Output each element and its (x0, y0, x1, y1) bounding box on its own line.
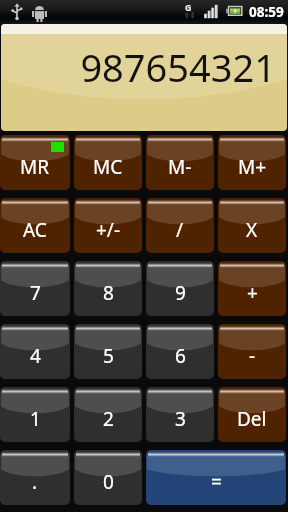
staticText: 987654321 (80, 41, 276, 93)
staticText: . (32, 469, 38, 495)
staticText: AC (23, 217, 47, 243)
staticText: 4 (30, 343, 41, 369)
staticText: 0 (103, 469, 114, 495)
button[interactable]: 0 (74, 450, 142, 505)
button[interactable]: MC (74, 135, 142, 190)
staticText: = (211, 469, 222, 495)
button[interactable]: M+ (218, 135, 286, 190)
staticText: X (246, 217, 258, 243)
button[interactable]: MR (0, 135, 70, 190)
staticText: 9 (175, 280, 186, 306)
button[interactable]: 1 (0, 387, 70, 442)
button[interactable]: 7 (0, 261, 70, 316)
staticText: + (247, 280, 258, 306)
staticText: MR (20, 154, 50, 180)
button[interactable]: . (0, 450, 70, 505)
button[interactable]: 3 (146, 387, 214, 442)
button[interactable]: +/- (74, 198, 142, 253)
button[interactable]: Del (218, 387, 286, 442)
staticText: MC (93, 154, 123, 180)
button[interactable]: 2 (74, 387, 142, 442)
button[interactable]: + (218, 261, 286, 316)
button[interactable]: / (146, 198, 214, 253)
button[interactable]: - (218, 324, 286, 379)
staticText: - (249, 343, 256, 369)
button[interactable]: 5 (74, 324, 142, 379)
staticText: 5 (103, 343, 114, 369)
button[interactable]: AC (0, 198, 70, 253)
staticText: 1 (30, 406, 41, 432)
staticText: +/- (96, 217, 121, 243)
staticText: 8 (103, 280, 114, 306)
button[interactable]: 4 (0, 324, 70, 379)
staticText: Del (237, 406, 267, 432)
staticText: 08:59 (249, 3, 284, 21)
button[interactable]: 9 (146, 261, 214, 316)
button[interactable]: 8 (74, 261, 142, 316)
staticText: / (176, 217, 184, 243)
staticText: 6 (175, 343, 186, 369)
button[interactable]: M- (146, 135, 214, 190)
staticText: 7 (30, 280, 41, 306)
staticText: M+ (238, 154, 267, 180)
button[interactable]: = (146, 450, 286, 505)
staticText: M- (168, 154, 192, 180)
staticText: 3 (175, 406, 186, 432)
button[interactable]: 6 (146, 324, 214, 379)
button[interactable]: X (218, 198, 286, 253)
staticText: G (185, 1, 192, 13)
staticText: 2 (103, 406, 114, 432)
